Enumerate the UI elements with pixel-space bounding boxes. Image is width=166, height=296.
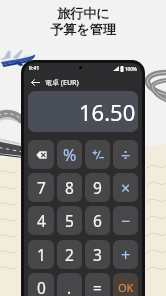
button[interactable]: 8 — [57, 173, 82, 202]
button[interactable]: 9 — [85, 173, 110, 202]
staticText: 2 — [65, 244, 74, 265]
staticText: % — [63, 144, 77, 166]
button[interactable]: 0 — [28, 273, 54, 296]
staticText: . — [67, 277, 72, 296]
button[interactable]: 3 — [85, 240, 110, 269]
button[interactable]: 2 — [57, 240, 82, 269]
button[interactable]: . — [57, 273, 82, 296]
button[interactable]: Delete — [28, 140, 54, 169]
staticText: × — [121, 177, 131, 199]
button[interactable]: 7 — [28, 173, 54, 202]
button[interactable]: − — [113, 206, 138, 235]
staticText: 5 — [65, 210, 74, 231]
button[interactable]: Back — [29, 76, 42, 89]
button[interactable]: = — [85, 273, 110, 296]
staticText: 3 — [93, 244, 102, 265]
button[interactable]: Plus minus — [85, 140, 110, 169]
staticText: 6 — [93, 210, 102, 231]
button[interactable]: OK — [113, 273, 138, 296]
staticText: 8 — [65, 177, 74, 198]
staticText: 0 — [37, 277, 46, 296]
button[interactable]: 6 — [85, 206, 110, 235]
staticText: 100% — [125, 66, 137, 72]
staticText: 9 — [93, 177, 102, 198]
staticText: 1 — [37, 244, 46, 265]
staticText: 4 — [37, 210, 46, 231]
staticText: 9:41 — [29, 65, 39, 72]
staticText: + — [121, 244, 131, 266]
staticText: ÷ — [121, 144, 131, 166]
button[interactable]: ÷ — [113, 140, 138, 169]
button[interactable]: 4 — [28, 206, 54, 235]
button[interactable]: % — [57, 140, 82, 169]
staticText: − — [121, 210, 131, 232]
staticText: 予算を管理 — [50, 21, 116, 37]
button[interactable]: + — [113, 240, 138, 269]
staticText: 7 — [37, 177, 46, 198]
staticText: OK — [118, 280, 134, 295]
staticText: 電卓 (EUR) — [45, 78, 79, 88]
button[interactable]: 5 — [57, 206, 82, 235]
staticText: 旅行中に — [57, 5, 110, 21]
button[interactable]: 1 — [28, 240, 54, 269]
button[interactable]: × — [113, 173, 138, 202]
staticText: 16.50 — [79, 97, 136, 127]
staticText: = — [93, 277, 102, 296]
